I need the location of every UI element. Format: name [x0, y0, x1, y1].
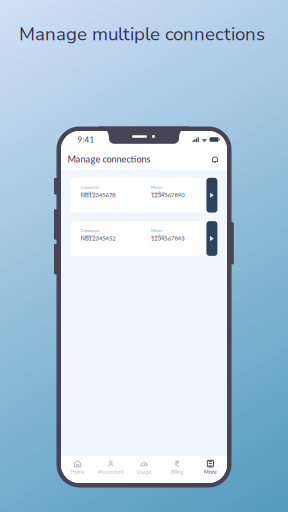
- button[interactable]: Home: [61, 456, 94, 483]
- staticText: My account: [98, 469, 124, 475]
- staticText: NB12345678: [81, 191, 227, 220]
- button[interactable]: Notifications: [211, 156, 219, 163]
- staticText: Meter number: [151, 228, 232, 285]
- staticText: Home: [71, 469, 85, 475]
- staticText: NB12345452: [81, 235, 227, 264]
- button[interactable]: Consumer number: [70, 221, 217, 256]
- staticText: Consumer number: [81, 228, 188, 285]
- staticText: Manage multiple connections: [19, 21, 265, 47]
- staticText: Manage connections: [67, 153, 150, 164]
- button[interactable]: Billing: [161, 456, 194, 483]
- staticText: 1234567843: [151, 235, 288, 264]
- staticText: More: [204, 469, 217, 475]
- button[interactable]: My account: [94, 456, 127, 483]
- staticText: 1234567890: [151, 191, 288, 220]
- staticText: Meter number: [151, 185, 232, 242]
- staticText: 9:41: [77, 135, 94, 144]
- button[interactable]: More: [194, 456, 227, 483]
- button[interactable]: Consumer number: [70, 178, 217, 213]
- staticText: Usage: [136, 469, 151, 475]
- staticText: Billing: [171, 469, 184, 475]
- button[interactable]: Usage: [127, 456, 161, 483]
- staticText: Consumer number: [81, 185, 188, 242]
